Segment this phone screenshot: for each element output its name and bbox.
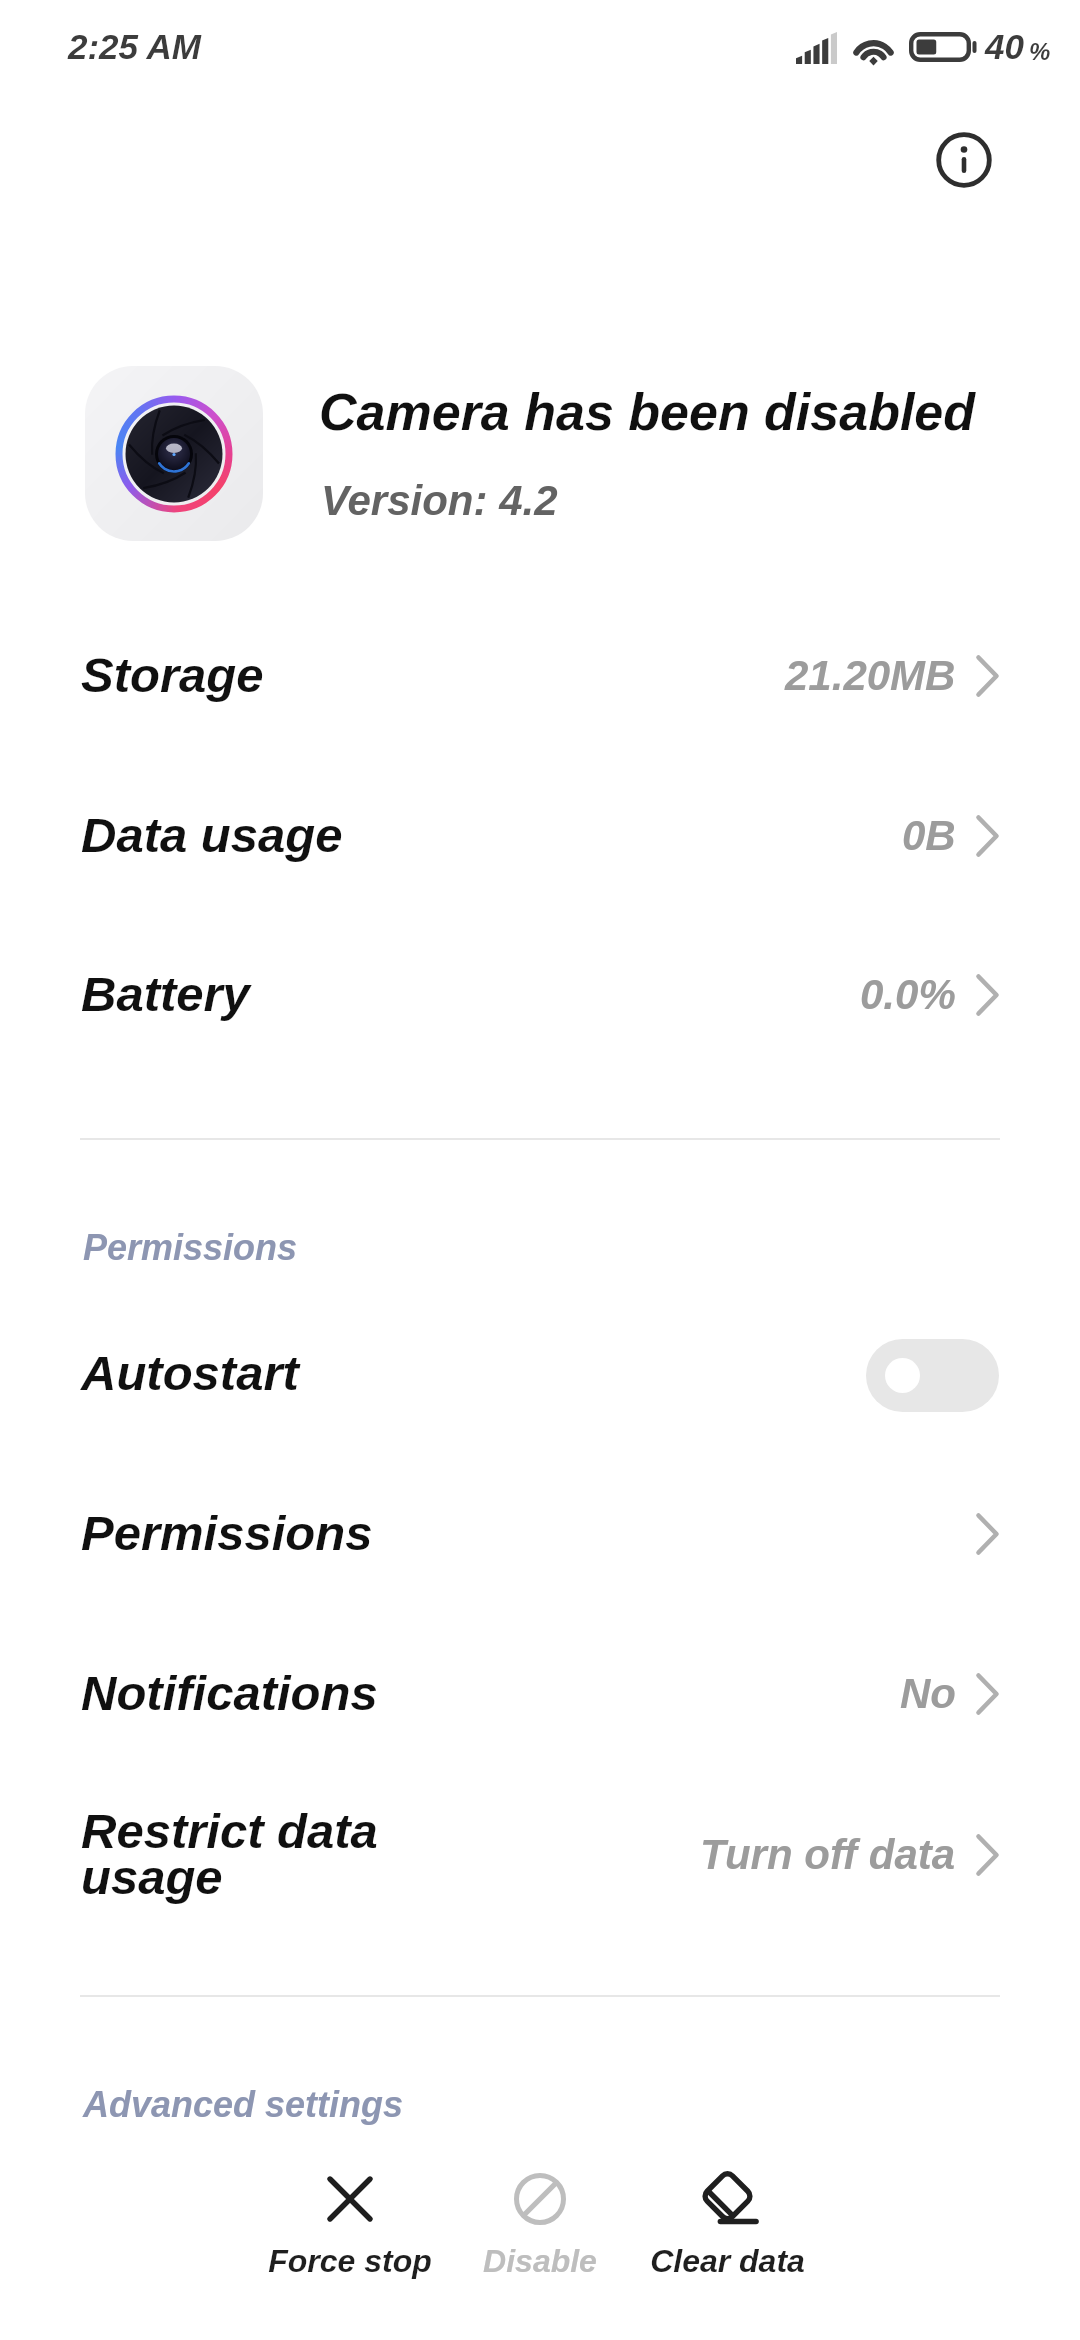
staticText: Advanced settings [83, 2084, 404, 2124]
staticText: 0B [902, 812, 956, 859]
staticText: Version: 4.2 [321, 477, 558, 524]
staticText: Autostart [81, 1346, 299, 1401]
button[interactable]: Autostart [0, 1294, 1080, 1453]
button[interactable]: Autostart toggle, off [866, 1339, 999, 1412]
staticText: Force stop [268, 2243, 432, 2279]
staticText: 40 [985, 27, 1024, 66]
staticText: Notifications [81, 1666, 378, 1721]
staticText: Permissions [83, 1227, 298, 1267]
staticText: 21.20MB [785, 652, 956, 699]
staticText: No [900, 1670, 956, 1717]
button[interactable]: Permissions [0, 1454, 1080, 1613]
staticText: Storage [81, 648, 264, 703]
staticText: Disable [483, 2243, 597, 2279]
staticText: usage [81, 1850, 223, 1905]
button[interactable]: App info [909, 105, 1019, 215]
staticText: Clear data [650, 2243, 805, 2279]
button[interactable]: Clear data [632, 2167, 822, 2307]
button[interactable]: Disable [445, 2167, 635, 2307]
staticText: Camera has been disabled [319, 383, 976, 441]
staticText: Permissions [81, 1506, 373, 1561]
button[interactable]: Data usage [0, 756, 1080, 915]
button[interactable]: Battery [0, 915, 1080, 1074]
staticText: 2:25 AM [68, 27, 201, 66]
staticText: Battery [81, 967, 250, 1022]
button[interactable]: Notifications [0, 1614, 1080, 1773]
staticText: Turn off data [700, 1831, 956, 1878]
button[interactable]: Force stop [255, 2167, 445, 2307]
staticText: Data usage [81, 808, 343, 863]
button[interactable]: Storage [0, 596, 1080, 755]
button[interactable]: Restrict data [0, 1789, 1080, 1948]
staticText: 0.0% [860, 971, 956, 1018]
staticText: % [1029, 38, 1051, 65]
staticText: Restrict data [81, 1804, 378, 1859]
